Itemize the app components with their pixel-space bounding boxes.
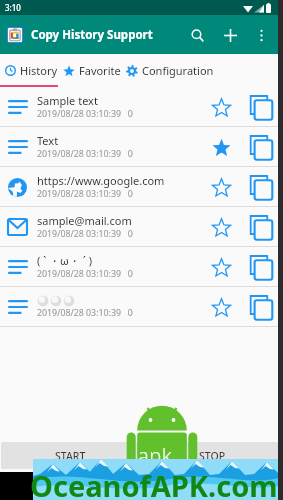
button[interactable]: Copy (236, 210, 280, 244)
button[interactable]: START (1, 442, 140, 469)
staticText: apk (138, 442, 173, 469)
button[interactable]: Copy (236, 170, 280, 204)
button[interactable]: Sample text (0, 87, 283, 126)
button[interactable]: Favorite (207, 250, 236, 284)
staticText: 2019/08/28 03:10:39 0 (37, 108, 133, 120)
staticText: 2019/08/28 03:10:39 0 (37, 148, 133, 160)
staticText: START (55, 449, 86, 463)
button[interactable]: More options (247, 21, 275, 49)
staticText: History (20, 63, 58, 78)
button[interactable]: Favorite (207, 210, 236, 244)
staticText: 3:10 (5, 2, 21, 13)
staticText: 2019/08/28 03:10:39 0 (37, 228, 133, 240)
button[interactable]: Copy (236, 290, 280, 324)
button[interactable]: Favorite (63, 59, 121, 82)
staticText: Sample text (37, 93, 98, 108)
button[interactable]: 2019/08/28 03:10:39 0 (0, 287, 283, 326)
staticText: Copy History Support (31, 27, 153, 43)
button[interactable]: STOP (143, 442, 282, 469)
staticText: Favorite (79, 63, 121, 78)
staticText: Text (37, 133, 59, 148)
staticText: https://www.google.com (37, 173, 165, 188)
button[interactable]: History (5, 59, 58, 82)
button[interactable]: https://www.google.com (0, 167, 283, 206)
button[interactable]: Favorite (207, 290, 236, 324)
button[interactable]: Copy (236, 250, 280, 284)
staticText: OceanofAPK.com (30, 466, 278, 500)
button[interactable]: Favorite (207, 170, 236, 204)
button[interactable]: sample@mail.com (0, 207, 283, 246)
button[interactable]: Copy (236, 90, 280, 124)
staticText: 2019/08/28 03:10:39 0 (37, 307, 133, 319)
staticText: ( ˋ ・ω・ ´ ) (37, 253, 93, 268)
staticText: 2019/08/28 03:10:39 0 (37, 188, 133, 200)
button[interactable]: Copy (236, 130, 280, 164)
button[interactable]: Configuration (126, 59, 214, 82)
staticText: sample@mail.com (37, 213, 132, 228)
button[interactable]: Text (0, 127, 283, 166)
button[interactable]: Favorite (207, 90, 236, 124)
button[interactable]: ( ˋ ・ω・ ´ ) (0, 247, 283, 286)
button[interactable]: Favorite (207, 130, 236, 164)
button[interactable]: Add (216, 21, 244, 49)
staticText: 2019/08/28 03:10:39 0 (37, 268, 133, 280)
staticText: Configuration (142, 63, 214, 78)
button[interactable]: Search (183, 21, 211, 49)
staticText: STOP (199, 449, 226, 463)
